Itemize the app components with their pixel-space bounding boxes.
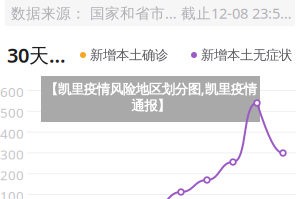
staticText: 200: [0, 166, 24, 184]
button[interactable]: Select time range: [7, 42, 66, 68]
staticText: 500: [0, 104, 24, 121]
staticText: 600: [0, 83, 24, 101]
staticText: 400: [0, 125, 24, 142]
staticText: 100: [0, 187, 24, 199]
staticText: 300: [0, 145, 24, 163]
staticText: 30天…: [7, 42, 66, 68]
staticText: 【凯里疫情风险地区划分图,凯里疫情通报】: [44, 80, 256, 114]
staticText: 新增本土确诊: [90, 47, 168, 63]
staticText: 数据来源： 国家和省市… 截止12-08 23:5…: [11, 3, 292, 23]
staticText: 新增本土无症状: [201, 47, 292, 63]
